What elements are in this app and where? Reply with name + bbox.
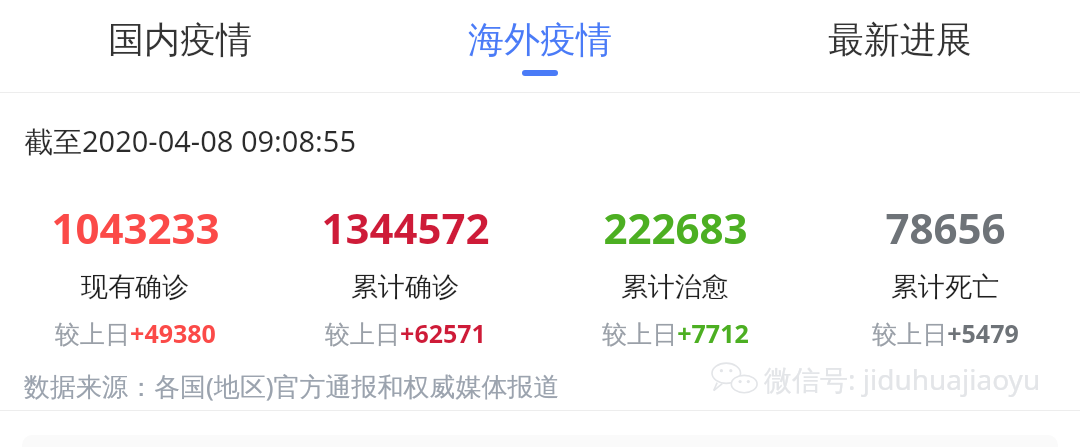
staticText: 海外疫情	[468, 17, 612, 62]
staticText: 累计治愈	[621, 270, 729, 304]
button[interactable]: 最新进展	[720, 0, 1080, 92]
staticText: 国内疫情	[108, 17, 252, 62]
staticText: 较上日+62571	[325, 316, 486, 350]
staticText: 较上日+49380	[55, 316, 216, 350]
staticText: 1344572	[321, 199, 490, 256]
button[interactable]: 1344572	[270, 199, 540, 350]
staticText: 较上日+5479	[872, 316, 1019, 350]
staticText: 累计死亡	[891, 270, 999, 304]
staticText: 现有确诊	[81, 270, 189, 304]
other: WeChat	[712, 361, 758, 397]
staticText: 1043233	[51, 199, 220, 256]
staticText: 较上日+7712	[602, 316, 749, 350]
button[interactable]: 78656	[810, 199, 1080, 350]
button[interactable]: 1043233	[0, 199, 270, 350]
staticText: 最新进展	[828, 17, 972, 62]
button[interactable]: 海外疫情	[360, 0, 720, 92]
staticText: 78656	[885, 199, 1006, 256]
staticText: 222683	[603, 199, 748, 256]
button[interactable]: 222683	[540, 199, 810, 350]
staticText: 截至2020-04-08 09:08:55	[24, 121, 356, 161]
button[interactable]: 国内疫情	[0, 0, 360, 92]
staticText: 微信号: jiduhuajiaoyu	[764, 360, 1041, 398]
staticText: 累计确诊	[351, 270, 459, 304]
staticText: 数据来源：各国(地区)官方通报和权威媒体报道	[24, 368, 560, 404]
